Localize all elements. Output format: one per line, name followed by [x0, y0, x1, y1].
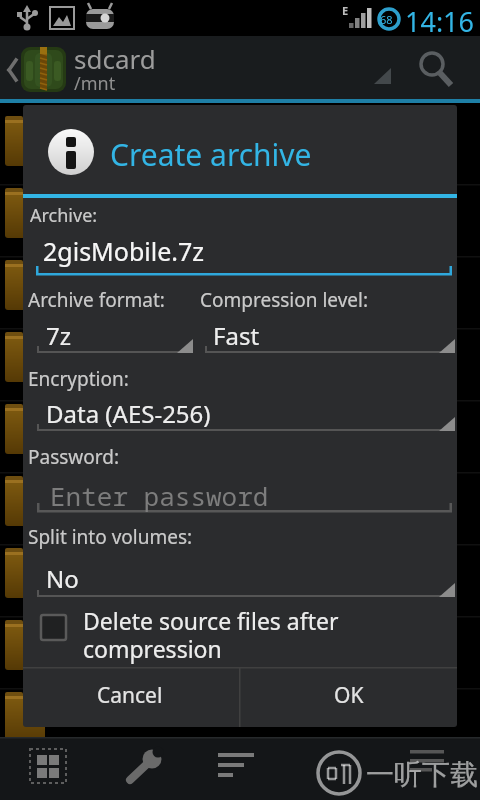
button[interactable]	[23, 668, 239, 729]
staticText: Cancel	[97, 681, 163, 710]
button[interactable]	[208, 740, 264, 796]
button[interactable]	[311, 740, 367, 796]
button[interactable]	[23, 363, 457, 435]
staticText: Archive:	[30, 203, 98, 228]
button[interactable]	[23, 285, 203, 357]
staticText: No	[46, 562, 79, 595]
staticText: 一听下载	[366, 757, 478, 792]
staticText: /mnt	[74, 71, 116, 96]
button[interactable]	[30, 598, 450, 652]
button[interactable]	[23, 203, 457, 281]
staticText: compression	[83, 633, 222, 664]
staticText: E	[342, 3, 349, 18]
staticText: 14:16	[405, 3, 475, 40]
staticText: sdcard	[74, 41, 156, 76]
staticText: Password:	[28, 444, 120, 470]
staticText: Create archive	[110, 134, 312, 175]
staticText: Delete source files after	[83, 605, 339, 636]
staticText: Archive format:	[28, 287, 165, 313]
staticText: Split into volumes:	[28, 524, 193, 550]
button[interactable]	[23, 514, 457, 598]
button[interactable]	[410, 40, 470, 96]
button[interactable]	[240, 668, 457, 729]
staticText: Enter password	[50, 478, 269, 513]
button[interactable]	[23, 441, 457, 514]
staticText: Compression level:	[200, 287, 369, 313]
staticText: Encryption:	[28, 366, 129, 392]
button[interactable]	[117, 740, 173, 796]
button[interactable]	[0, 36, 400, 103]
staticText: 2gisMobile.7z	[43, 234, 205, 268]
button[interactable]	[203, 285, 457, 357]
staticText: Fast	[213, 319, 260, 352]
staticText: 7z	[46, 319, 72, 352]
staticText: OK	[334, 681, 364, 710]
button[interactable]	[20, 740, 76, 796]
button[interactable]	[402, 740, 458, 796]
staticText: 68	[380, 12, 393, 27]
staticText: Data (AES-256)	[46, 397, 211, 430]
